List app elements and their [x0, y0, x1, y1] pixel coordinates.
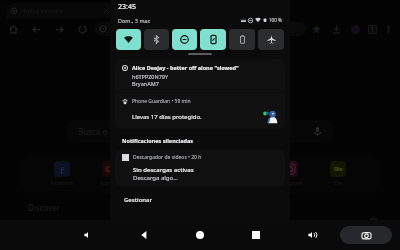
staticText: Dom., 3 mar.: [118, 17, 151, 24]
button[interactable]: Gestionar: [122, 195, 155, 205]
staticText: Phone Guardian • 59 min: [132, 98, 191, 105]
button[interactable]: More options: [384, 25, 393, 34]
staticText: Sin descargas activas: [133, 166, 194, 174]
staticText: f: [60, 164, 64, 174]
button[interactable]: Auto-rotate: [200, 29, 226, 50]
staticText: Nueva pestaña: [21, 7, 64, 15]
staticText: 23:45: [118, 2, 136, 12]
staticText: YouTube: [100, 180, 121, 187]
button[interactable]: Busca o escribe una URL: [66, 120, 334, 142]
staticText: Llevas 17 días protegido.: [132, 113, 202, 121]
button[interactable]: Ole: [321, 161, 355, 187]
staticText: Notificaciones silenciadas: [122, 137, 194, 144]
button[interactable]: Wi-Fi: [116, 29, 141, 50]
button[interactable]: Alice Deejay - better off alone "slowed": [115, 59, 285, 92]
button[interactable]: Reload: [76, 23, 88, 35]
staticText: Instagram: [278, 180, 303, 187]
button[interactable]: Descargador de videos • 20 h: [115, 149, 285, 187]
staticText: BryanAM7: [132, 80, 159, 87]
button[interactable]: Back: [30, 23, 42, 35]
staticText: Alice Deejay - better off alone "slowed": [132, 64, 239, 71]
staticText: Busca: [110, 25, 127, 33]
staticText: 100 %: [269, 17, 282, 23]
button[interactable]: Instagram: [273, 161, 307, 187]
staticText: Ole: [334, 180, 343, 187]
button[interactable]: Busca: [95, 22, 306, 36]
button[interactable]: Volume up: [284, 220, 340, 250]
button[interactable]: Home: [172, 220, 228, 250]
staticText: 1: [371, 26, 374, 33]
staticText: Descargador de videos • 20 h: [133, 154, 202, 161]
staticText: Busca o escribe una URL: [78, 126, 170, 137]
button[interactable]: Back: [116, 220, 172, 250]
button[interactable]: New tab: [120, 7, 127, 14]
button[interactable]: Profile: [351, 25, 360, 34]
button[interactable]: Airplane mode: [258, 29, 284, 50]
staticText: Ole: [334, 166, 343, 173]
staticText: Gestionar: [124, 196, 153, 204]
button[interactable]: Do not disturb: [172, 29, 197, 50]
button[interactable]: Home: [7, 23, 19, 35]
other: Voice search: [313, 127, 322, 136]
button[interactable]: Screenshot: [340, 226, 392, 244]
staticText: Discover: [28, 202, 61, 213]
button[interactable]: f: [45, 161, 79, 187]
button[interactable]: Battery saver: [229, 29, 255, 50]
button[interactable]: Settings: [369, 217, 378, 226]
button[interactable]: YouTube: [93, 161, 127, 187]
staticText: Descarga algo...: [133, 174, 178, 182]
other: Close tab: [104, 8, 109, 13]
button[interactable]: Forward: [53, 23, 65, 35]
button[interactable]: Phone Guardian • 59 min: [115, 93, 285, 129]
button[interactable]: Bookmark: [312, 25, 321, 34]
button[interactable]: Tabs: [368, 25, 377, 34]
button[interactable]: Recents: [228, 220, 284, 250]
staticText: Facebook: [51, 180, 74, 187]
button[interactable]: Bluetooth: [144, 29, 169, 50]
button[interactable]: Nueva pestaña: [6, 3, 114, 18]
staticText: h6TPPZ0N79Y: [132, 73, 169, 80]
button[interactable]: Volume down: [60, 220, 116, 250]
button[interactable]: Downloads: [330, 23, 342, 35]
